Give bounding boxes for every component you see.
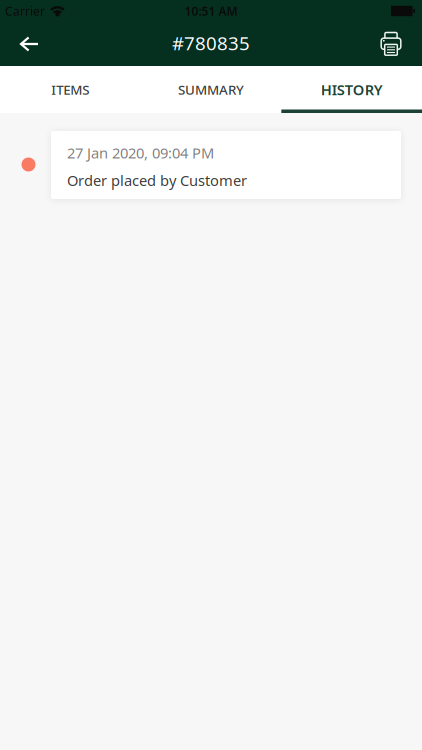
button[interactable]: Back xyxy=(0,23,38,64)
button[interactable]: SUMMARY xyxy=(141,66,281,113)
staticText: HISTORY xyxy=(321,80,383,99)
staticText: Carrier xyxy=(5,3,45,19)
button[interactable]: HISTORY xyxy=(281,66,422,113)
staticText: 27 Jan 2020, 09:04 PM xyxy=(67,143,214,162)
button[interactable]: ITEMS xyxy=(0,66,141,113)
staticText: Order placed by Customer xyxy=(67,170,247,190)
button[interactable]: Print xyxy=(378,32,422,56)
staticText: #780835 xyxy=(172,31,250,55)
staticText: 10:51 AM xyxy=(184,3,237,19)
staticText: SUMMARY xyxy=(178,81,244,98)
staticText: ITEMS xyxy=(51,81,89,98)
